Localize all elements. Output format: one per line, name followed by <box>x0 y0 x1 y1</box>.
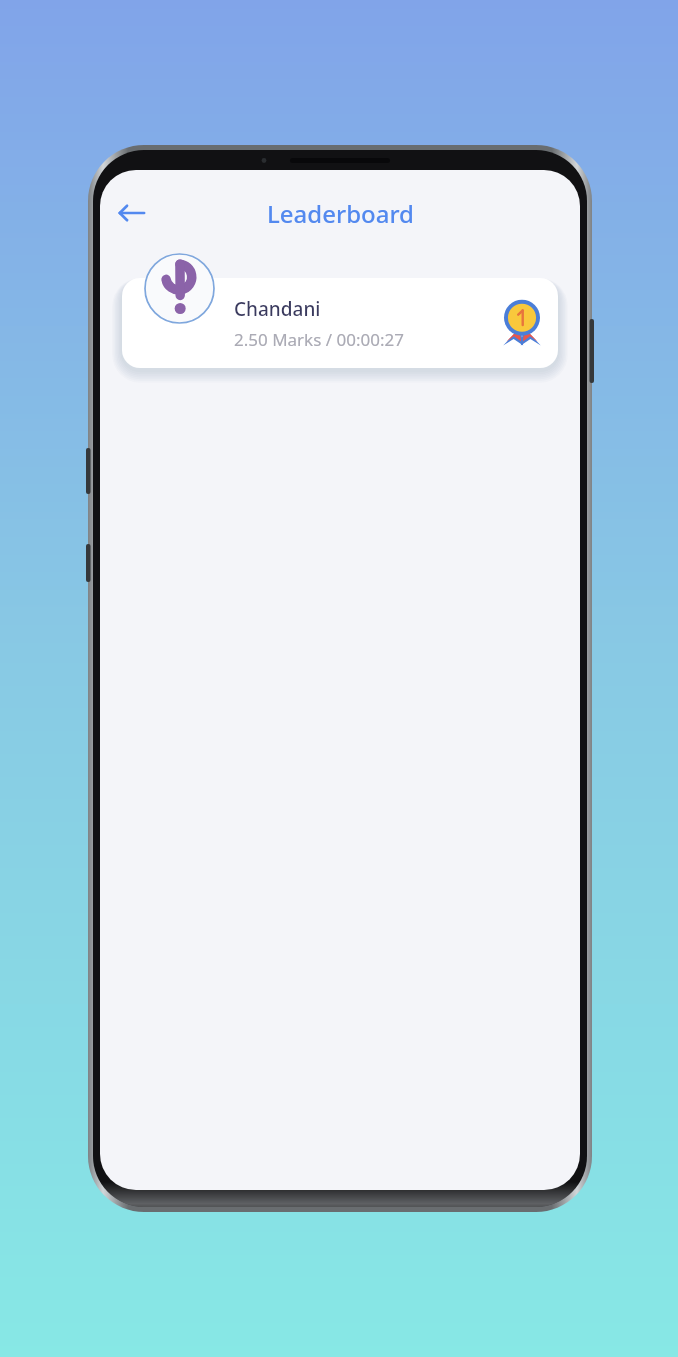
button[interactable]: Chandani <box>122 278 558 368</box>
staticText: Leaderboard <box>267 197 414 230</box>
button[interactable]: Back <box>108 190 154 236</box>
staticText: Chandani <box>234 296 321 322</box>
button[interactable]: Profile avatar <box>144 253 215 324</box>
other: Rank 1 medal <box>502 300 542 346</box>
staticText: 2.50 Marks / 00:00:27 <box>234 328 404 351</box>
